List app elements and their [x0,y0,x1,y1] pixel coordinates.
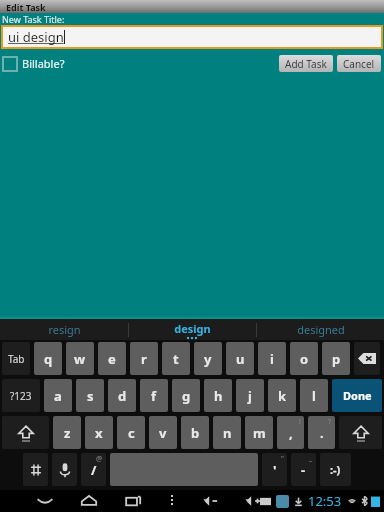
staticText: :-) [330,462,341,477]
button[interactable]: / [81,453,106,486]
staticText: resign [48,322,81,337]
button[interactable]: x [85,416,113,449]
staticText: Done [343,388,372,403]
button[interactable]: u [226,342,254,375]
staticText: s [87,387,94,405]
button[interactable]: t [162,342,190,375]
button[interactable]: Shift [2,416,49,449]
button[interactable]: Voice input [52,453,77,486]
button[interactable]: - [291,453,316,486]
staticText: Billable? [22,56,65,71]
button[interactable]: f [140,379,168,412]
staticText: 12:53 [308,492,342,510]
staticText: o [300,350,309,368]
staticText: designed [297,322,345,337]
button[interactable]: Back [36,492,54,510]
button[interactable]: s [76,379,104,412]
staticText: y [204,350,212,368]
staticText: Edit Task [6,1,46,13]
staticText: n [223,424,232,442]
staticText: Cancel [343,57,375,71]
button[interactable]: Shift right [339,416,382,449]
button[interactable]: w [66,342,94,375]
staticText: i [270,350,274,368]
button[interactable]: design [129,319,256,340]
staticText: ! [299,417,301,427]
button[interactable]: Delete [354,342,380,375]
button[interactable]: designed [257,319,384,340]
button[interactable]: i [258,342,286,375]
button[interactable]: More options [164,493,180,509]
staticText: e [108,350,116,368]
staticText: k [278,387,287,405]
button[interactable]: Cancel [337,55,381,72]
button[interactable]: Recent apps [124,492,142,510]
staticText: q [44,350,53,368]
button[interactable]: a [44,379,72,412]
button[interactable]: ' [262,453,287,486]
staticText: , [289,424,293,442]
button[interactable]: d [108,379,136,412]
staticText: design [174,321,211,336]
button[interactable]: Volume up [244,492,262,510]
staticText: " [281,454,284,464]
staticText: v [159,424,167,442]
button[interactable]: v [149,416,177,449]
button[interactable]: z [53,416,81,449]
button[interactable]: Done [332,379,382,412]
button[interactable]: g [172,379,200,412]
button[interactable]: Tab [2,342,30,375]
staticText: l [312,387,316,405]
button[interactable]: :-) [320,453,351,486]
button[interactable]: Add Task [279,55,333,72]
button[interactable]: ui design [3,27,381,47]
button[interactable]: j [236,379,264,412]
button[interactable]: n [213,416,241,449]
staticText: r [141,350,147,368]
staticText: / [91,461,97,479]
staticText: u [236,350,245,368]
staticText: . [320,424,324,442]
staticText: ' [273,461,277,479]
staticText: b [191,424,200,442]
staticText: _ [309,454,313,464]
button[interactable]: resign [0,319,128,340]
button[interactable]: y [194,342,222,375]
button[interactable]: q [34,342,62,375]
button[interactable]: b [181,416,209,449]
staticText: w [74,350,86,368]
staticText: ?123 [10,389,32,403]
button[interactable]: ?123 [2,379,40,412]
staticText: g [182,387,191,405]
button[interactable]: Billable? [3,56,65,71]
staticText: f [151,387,157,405]
button[interactable]: r [130,342,158,375]
staticText: ? [328,417,332,427]
button[interactable]: Volume down [202,492,220,510]
staticText: x [95,424,103,442]
button[interactable]: h [204,379,232,412]
staticText: c [128,424,135,442]
staticText: Tab [8,352,25,366]
button[interactable]: k [268,379,296,412]
staticText: Add Task [285,57,327,71]
button[interactable]: . [308,416,335,449]
staticText: t [173,350,179,368]
staticText: j [248,387,252,405]
staticText: @ [96,454,103,464]
staticText: h [214,387,223,405]
staticText: z [64,424,71,442]
button[interactable]: c [117,416,145,449]
staticText: a [54,387,62,405]
staticText: p [332,350,341,368]
staticText: d [118,387,127,405]
button[interactable]: o [290,342,318,375]
button[interactable]: , [277,416,304,449]
button[interactable]: Settings [23,453,48,486]
button[interactable]: l [300,379,328,412]
button[interactable]: e [98,342,126,375]
button[interactable]: p [322,342,350,375]
button[interactable]: Home [80,492,98,510]
button[interactable]: m [245,416,273,449]
